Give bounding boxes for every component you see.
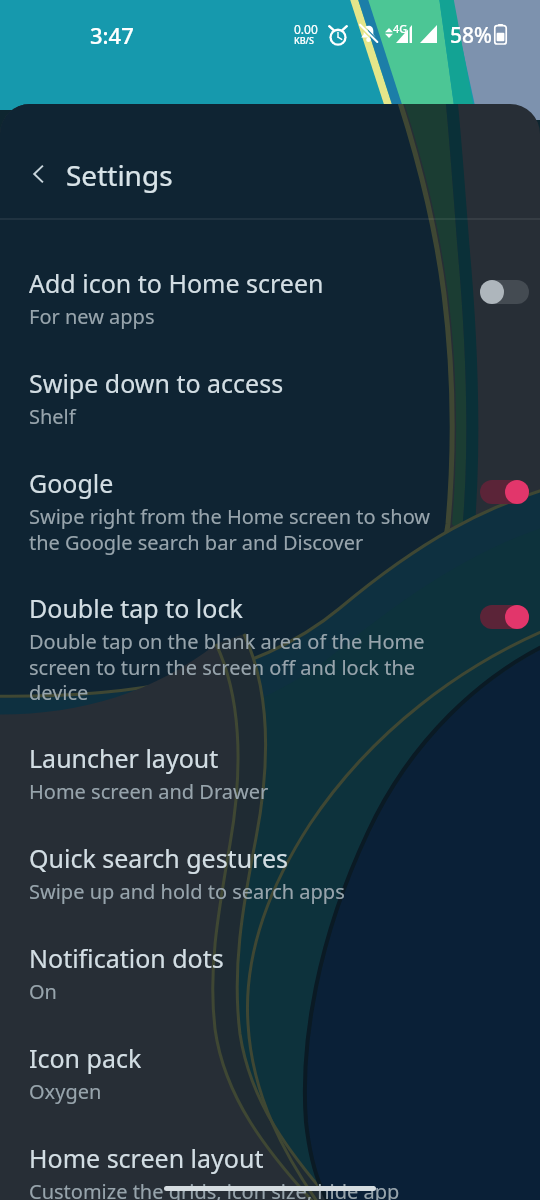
staticText: Swipe right from the Home screen to show… — [29, 503, 441, 555]
staticText: Quick search gestures — [29, 841, 441, 875]
button[interactable]: Add icon to Home screen — [0, 252, 540, 352]
staticText: Settings — [66, 156, 173, 194]
button[interactable]: Toggle on — [480, 480, 529, 504]
button[interactable]: Notification dots — [0, 927, 540, 1027]
staticText: Double tap on the blank area of the Home… — [29, 628, 441, 705]
staticText: Google — [29, 466, 441, 500]
button[interactable]: Icon pack — [0, 1027, 540, 1127]
staticText: Swipe down to access — [29, 366, 441, 400]
staticText: Home screen layout — [29, 1141, 441, 1175]
staticText: Swipe up and hold to search apps — [29, 878, 441, 905]
staticText: On — [29, 978, 441, 1005]
staticText: KB/S — [294, 34, 314, 46]
staticText: Double tap to lock — [29, 591, 441, 625]
staticText: For new apps — [29, 303, 441, 330]
button[interactable]: Quick search gestures — [0, 827, 540, 927]
staticText: 58% — [450, 21, 492, 50]
staticText: 4G — [393, 21, 408, 36]
staticText: Customize the grids, icon size, hide app… — [29, 1178, 441, 1200]
staticText: Oxygen — [29, 1078, 441, 1105]
staticText: Shelf — [29, 403, 441, 430]
staticText: Home screen and Drawer — [29, 778, 441, 805]
button[interactable]: Toggle on — [480, 605, 529, 629]
button[interactable]: Launcher layout — [0, 727, 540, 827]
staticText: 0.00 — [294, 21, 318, 37]
button[interactable]: Back — [18, 153, 60, 195]
staticText: Icon pack — [29, 1041, 441, 1075]
button[interactable]: Google — [0, 452, 540, 577]
button[interactable]: Toggle off — [480, 280, 529, 304]
staticText: Add icon to Home screen — [29, 266, 441, 300]
staticText: Notification dots — [29, 941, 441, 975]
button[interactable]: Double tap to lock — [0, 577, 540, 727]
button[interactable]: Home screen layout — [0, 1127, 540, 1200]
button[interactable]: Swipe down to access — [0, 352, 540, 452]
staticText: 3:47 — [90, 20, 134, 50]
staticText: Launcher layout — [29, 741, 441, 775]
